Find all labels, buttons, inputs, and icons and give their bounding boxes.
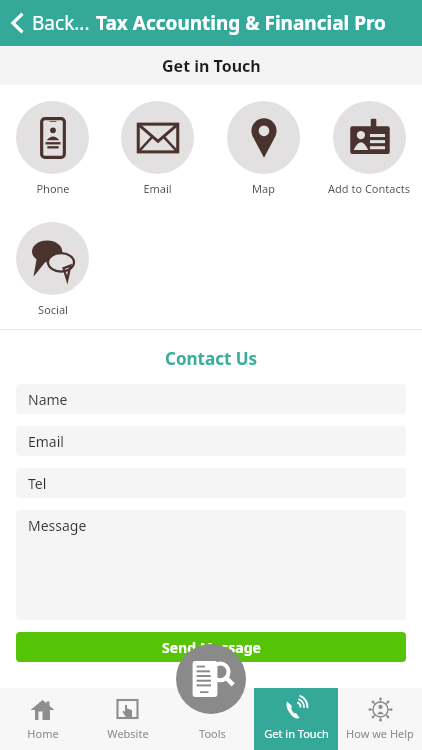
staticText: Email bbox=[143, 181, 172, 196]
button[interactable]: Back... bbox=[0, 0, 96, 46]
other: Phone bbox=[16, 101, 89, 174]
staticText: Send Message bbox=[162, 638, 261, 657]
staticText: Back... bbox=[32, 10, 90, 36]
button[interactable]: Tools bbox=[176, 644, 246, 714]
other: Add to Contacts bbox=[333, 101, 406, 174]
staticText: Contact Us bbox=[165, 347, 258, 370]
button[interactable]: Social bbox=[0, 220, 105, 319]
staticText: Social bbox=[38, 302, 68, 317]
staticText: Message bbox=[28, 516, 87, 535]
button[interactable]: Name bbox=[16, 384, 406, 414]
staticText: Name bbox=[28, 390, 68, 409]
button[interactable]: Tel bbox=[16, 468, 406, 498]
staticText: Map bbox=[252, 181, 275, 196]
staticText: Add to Contacts bbox=[328, 181, 410, 196]
staticText: Tax Accounting & Financial Pro bbox=[96, 10, 386, 36]
staticText: How we Help bbox=[346, 726, 414, 741]
button[interactable]: Send Message bbox=[16, 632, 406, 662]
staticText: Tools bbox=[199, 726, 226, 741]
staticText: Website bbox=[107, 726, 149, 741]
button[interactable]: Map bbox=[210, 99, 316, 198]
button[interactable]: Home bbox=[0, 688, 85, 750]
staticText: Phone bbox=[36, 181, 70, 196]
button[interactable]: Email bbox=[16, 426, 406, 456]
other: Email bbox=[121, 101, 194, 174]
other: Social bbox=[16, 222, 89, 295]
staticText: Tel bbox=[28, 474, 47, 493]
button[interactable]: Tools bbox=[170, 688, 254, 750]
button[interactable]: Email bbox=[105, 99, 210, 198]
button[interactable]: Website bbox=[85, 688, 170, 750]
other: Map bbox=[227, 101, 300, 174]
staticText: Home bbox=[27, 726, 59, 741]
button[interactable]: Phone bbox=[0, 99, 105, 198]
button[interactable]: Add to Contacts bbox=[316, 99, 422, 198]
staticText: Get in Touch bbox=[162, 55, 261, 77]
staticText: Email bbox=[28, 432, 64, 451]
button[interactable]: How we Help bbox=[338, 688, 422, 750]
button[interactable]: Message bbox=[16, 510, 406, 620]
staticText: Get in Touch bbox=[264, 726, 329, 741]
button[interactable]: Get in Touch bbox=[254, 688, 338, 750]
